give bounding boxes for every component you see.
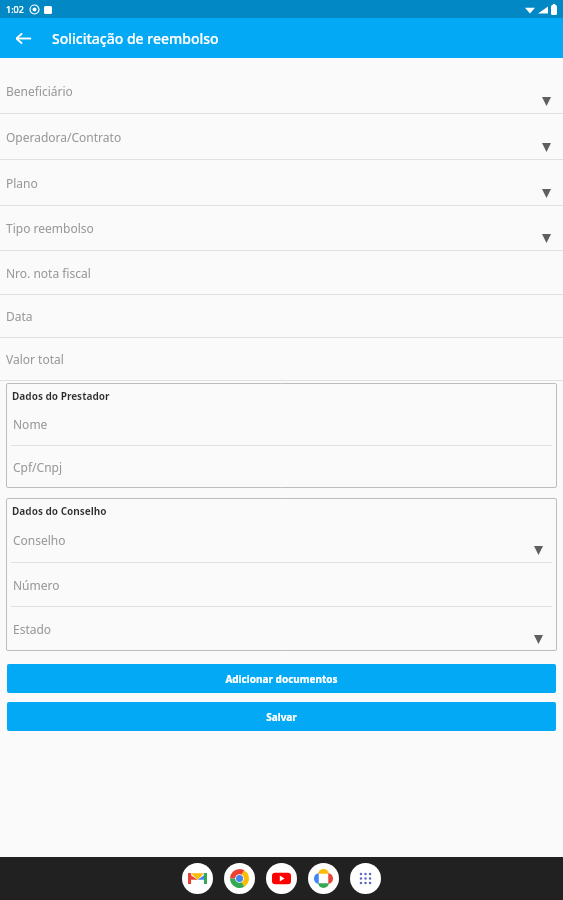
button[interactable]: Estado bbox=[6, 607, 557, 651]
staticText: Dados do Prestador bbox=[12, 389, 110, 403]
button[interactable]: Adicionar documentos bbox=[7, 664, 556, 693]
staticText: 1:02 bbox=[6, 3, 24, 15]
staticText: Dados do Conselho bbox=[12, 504, 107, 518]
staticText: Adicionar documentos bbox=[225, 672, 338, 686]
button[interactable]: Back bbox=[8, 23, 38, 53]
staticText: Nome bbox=[13, 416, 48, 432]
button[interactable]: Cpf/Cnpj bbox=[6, 446, 557, 488]
staticText: Nro. nota fiscal bbox=[6, 265, 91, 281]
button[interactable]: Valor total bbox=[0, 338, 563, 381]
button[interactable]: Nro. nota fiscal bbox=[0, 251, 563, 295]
staticText: Estado bbox=[13, 621, 52, 637]
staticText: Data bbox=[6, 308, 33, 324]
staticText: Valor total bbox=[6, 351, 64, 367]
button[interactable]: Beneficiário bbox=[0, 68, 563, 114]
button[interactable]: Operadora/Contrato bbox=[0, 114, 563, 160]
button[interactable]: App bbox=[308, 863, 339, 894]
staticText: Beneficiário bbox=[6, 83, 73, 99]
button[interactable]: App bbox=[350, 863, 381, 894]
button[interactable]: App bbox=[224, 863, 255, 894]
staticText: Plano bbox=[6, 175, 38, 191]
button[interactable]: Número bbox=[6, 563, 557, 606]
staticText: Operadora/Contrato bbox=[6, 129, 122, 145]
button[interactable]: Data bbox=[0, 295, 563, 338]
button[interactable]: Conselho bbox=[6, 518, 557, 562]
staticText: Número bbox=[13, 577, 60, 593]
staticText: Salvar bbox=[266, 710, 297, 724]
button[interactable]: Nome bbox=[6, 403, 557, 445]
staticText: Cpf/Cnpj bbox=[13, 459, 63, 475]
button[interactable]: Plano bbox=[0, 160, 563, 206]
staticText: Tipo reembolso bbox=[6, 220, 94, 236]
button[interactable]: App bbox=[266, 863, 297, 894]
button[interactable]: Salvar bbox=[7, 702, 556, 731]
button[interactable]: App bbox=[182, 863, 213, 894]
button[interactable]: Tipo reembolso bbox=[0, 206, 563, 251]
staticText: Conselho bbox=[13, 532, 66, 548]
staticText: Solicitação de reembolso bbox=[52, 29, 219, 48]
